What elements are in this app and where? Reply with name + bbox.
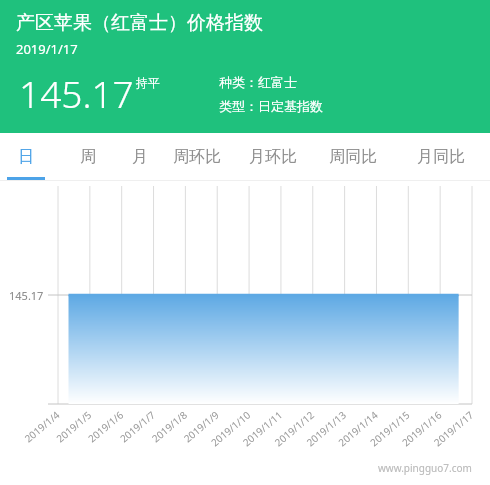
button[interactable]: 月 [122,133,158,181]
staticText: 日 [18,147,34,167]
staticText: 周同比 [329,147,377,167]
staticText: 2019/1/17 [16,40,78,58]
staticText: 月环比 [249,147,297,167]
staticText: 持平 [136,75,160,90]
staticText: 月同比 [417,147,465,167]
button[interactable]: 月环比 [241,133,305,181]
staticText: 周 [80,147,96,167]
staticText: 145.17 [19,68,134,118]
button[interactable]: 月同比 [409,133,473,181]
staticText: 周环比 [173,147,221,167]
button[interactable]: 周同比 [321,133,385,181]
staticText: 类型：日定基指数 [219,98,323,114]
button[interactable]: 周环比 [165,133,229,181]
staticText: 产区苹果（红富士）价格指数 [16,11,263,35]
button[interactable]: 周 [70,133,106,181]
button[interactable]: 日 [8,133,44,181]
staticText: 种类：红富士 [219,74,297,90]
staticText: 月 [132,147,148,167]
